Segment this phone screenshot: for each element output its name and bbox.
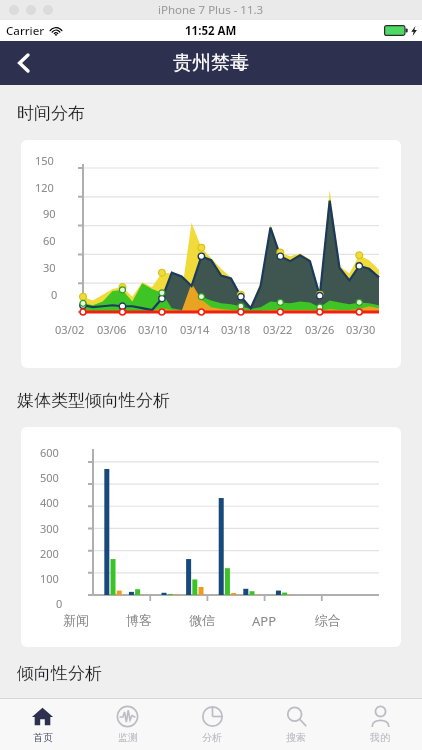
staticText: 11:52 AM [185, 23, 237, 39]
staticText: 300 [40, 521, 59, 536]
staticText: 首页 [33, 731, 53, 744]
staticText: 我的 [370, 731, 390, 744]
staticText: 倾向性分析 [17, 663, 102, 684]
staticText: 200 [40, 546, 59, 561]
staticText: 新闻 [63, 612, 89, 628]
button[interactable]: 600 [21, 427, 401, 647]
button[interactable]: 150 [21, 140, 401, 368]
button[interactable]: 搜索 [254, 699, 338, 750]
staticText: 60 [43, 233, 56, 248]
staticText: 03/22 [263, 322, 293, 337]
staticText: 综合 [315, 612, 341, 628]
staticText: iPhone 7 Plus - 11.3 [158, 2, 264, 18]
button[interactable]: 分析 [170, 699, 254, 750]
staticText: 分析 [202, 731, 222, 744]
staticText: 400 [40, 495, 59, 510]
staticText: 30 [43, 260, 56, 275]
staticText: 监测 [118, 731, 138, 744]
staticText: 03/26 [305, 322, 335, 337]
staticText: 0 [51, 287, 58, 302]
staticText: 600 [40, 445, 59, 460]
staticText: 120 [35, 180, 54, 195]
staticText: 博客 [126, 612, 152, 628]
staticText: 时间分布 [17, 103, 85, 124]
button[interactable]: 监测 [85, 699, 170, 750]
staticText: Carrier [6, 23, 45, 39]
button[interactable]: 首页 [0, 699, 85, 750]
staticText: 03/02 [55, 322, 85, 337]
staticText: 微信 [189, 612, 215, 628]
staticText: 90 [43, 206, 56, 221]
staticText: 贵州禁毒 [173, 51, 249, 75]
staticText: 03/18 [221, 322, 251, 337]
staticText: 0 [56, 596, 63, 611]
staticText: 03/10 [138, 322, 168, 337]
staticText: 搜索 [286, 731, 306, 744]
staticText: 150 [35, 153, 54, 168]
staticText: 03/14 [180, 322, 210, 337]
staticText: APP [252, 612, 277, 630]
staticText: 100 [40, 571, 59, 586]
staticText: 500 [40, 470, 59, 485]
staticText: 03/06 [97, 322, 127, 337]
staticText: 媒体类型倾向性分析 [17, 390, 170, 411]
button[interactable]: 我的 [338, 699, 422, 750]
button[interactable]: Back [0, 41, 48, 85]
staticText: 03/30 [346, 322, 376, 337]
